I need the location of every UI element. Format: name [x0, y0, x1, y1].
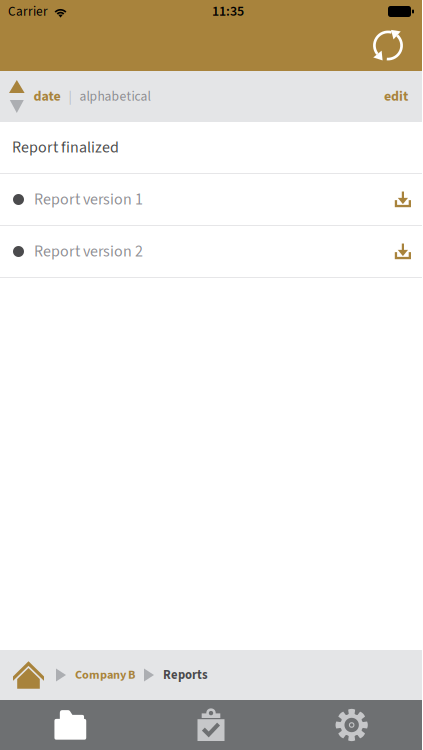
staticText: 11:35: [212, 1, 244, 21]
staticText: alphabetical: [80, 87, 151, 106]
button[interactable]: date: [0, 74, 151, 119]
button[interactable]: Refresh: [365, 22, 411, 68]
staticText: Report version 2: [34, 240, 143, 263]
staticText: Report version 1: [34, 188, 143, 211]
staticText: Report finalized: [12, 136, 119, 159]
button[interactable]: Files: [0, 700, 141, 750]
button[interactable]: Report version 2: [0, 226, 422, 277]
staticText: date: [34, 86, 61, 106]
button[interactable]: Tasks: [141, 700, 281, 750]
button[interactable]: edit: [370, 74, 422, 118]
button[interactable]: Report version 1: [0, 174, 422, 225]
button[interactable]: Report finalized: [0, 122, 422, 173]
button[interactable]: Reports: [163, 658, 208, 692]
staticText: |: [69, 87, 72, 106]
button[interactable]: Settings: [281, 700, 422, 750]
button[interactable]: Company B: [75, 658, 135, 692]
staticText: Company B: [75, 666, 135, 684]
button[interactable]: Home: [9, 655, 48, 695]
staticText: edit: [384, 86, 408, 106]
staticText: Carrier: [8, 2, 48, 21]
staticText: Reports: [163, 666, 208, 684]
